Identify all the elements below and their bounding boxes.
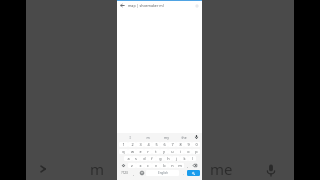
staticText: 2 [131,142,134,147]
button[interactable]: w [128,149,136,154]
button[interactable]: o [184,149,192,154]
button[interactable]: Emoji [137,169,146,177]
button[interactable]: p [192,149,200,154]
button[interactable]: m [176,163,184,168]
button[interactable]: the [175,133,193,141]
button[interactable]: 1 [119,142,128,147]
staticText: I [129,135,131,140]
staticText: me [210,159,233,179]
staticText: u [171,149,174,154]
staticText: d [143,156,146,161]
staticText: k [183,156,186,161]
staticText: s [135,156,137,161]
staticText: English [158,171,168,175]
button[interactable]: i [176,149,184,154]
button[interactable]: I [120,133,139,141]
button[interactable]: h [164,156,172,161]
staticText: 6 [163,142,166,147]
staticText: v [155,163,157,168]
staticText: z [131,163,133,168]
button[interactable]: x [136,163,144,168]
button[interactable]: Voice search [266,164,276,177]
staticText: 3 [139,142,142,147]
staticText: ?123 [121,171,128,175]
staticText: , [133,171,134,176]
button[interactable]: 8 [176,142,184,147]
staticText: w [131,149,134,154]
button[interactable]: English [146,170,179,176]
button[interactable]: y [160,149,168,154]
button[interactable]: 3 [136,142,144,147]
staticText: y [163,149,165,154]
staticText: 5 [155,142,158,147]
staticText: 9 [187,142,190,147]
button[interactable]: q [119,149,128,154]
staticText: o [187,149,190,154]
staticText: h [167,156,170,161]
staticText: the [181,135,187,140]
staticText: 4 [147,142,150,147]
button[interactable]: t [152,149,160,154]
staticText: , [187,163,188,168]
button[interactable]: d [140,156,148,161]
button[interactable]: 0 [192,142,200,147]
button[interactable]: 6 [160,142,168,147]
button[interactable]: s [132,156,140,161]
staticText: 8 [179,142,182,147]
staticText: p [195,149,198,154]
staticText: 7 [171,142,174,147]
button[interactable]: z [128,163,136,168]
staticText: 1 [122,142,125,147]
staticText: m [146,135,150,140]
staticText: my [164,135,169,140]
button[interactable]: Back [117,1,202,10]
staticText: e [139,149,142,154]
staticText: t [155,149,157,154]
staticText: . [183,171,184,176]
button[interactable]: Search [187,170,200,176]
button[interactable]: 4 [144,142,152,147]
button[interactable]: b [160,163,168,168]
button[interactable]: n [168,163,176,168]
staticText: 0 [195,142,198,147]
button[interactable]: ?123 [119,170,130,176]
staticText: n [171,163,174,168]
button[interactable]: 7 [168,142,176,147]
staticText: r [147,149,149,154]
staticText: map | shoemaker ml [128,3,164,8]
button[interactable]: Voice input [193,133,199,141]
staticText: i [180,149,181,154]
staticText: x [139,163,142,168]
staticText: g [159,156,162,161]
button[interactable]: , [184,163,190,168]
staticText: m [90,159,105,179]
button[interactable]: r [144,149,152,154]
button[interactable]: 5 [152,142,160,147]
button[interactable]: c [144,163,152,168]
staticText: b [163,163,166,168]
button[interactable]: l [188,156,196,161]
button[interactable]: Voice search [195,4,199,8]
button[interactable]: e [136,149,144,154]
button[interactable]: , [130,169,137,177]
button[interactable]: 9 [184,142,192,147]
button[interactable]: Shift [119,163,128,168]
staticText: f [151,156,153,161]
button[interactable]: v [152,163,160,168]
button[interactable]: a [124,156,132,161]
staticText: q [122,149,125,154]
button[interactable]: j [172,156,180,161]
button[interactable]: Back [120,3,125,8]
button[interactable]: u [168,149,176,154]
staticText: j [176,156,177,161]
button[interactable]: my [157,133,175,141]
button[interactable]: m [139,133,157,141]
staticText: l [192,156,193,161]
staticText: c [147,163,149,168]
button[interactable]: 2 [128,142,136,147]
button[interactable]: Backspace [190,163,200,168]
button[interactable]: f [148,156,156,161]
button[interactable]: g [156,156,164,161]
button[interactable]: k [180,156,188,161]
